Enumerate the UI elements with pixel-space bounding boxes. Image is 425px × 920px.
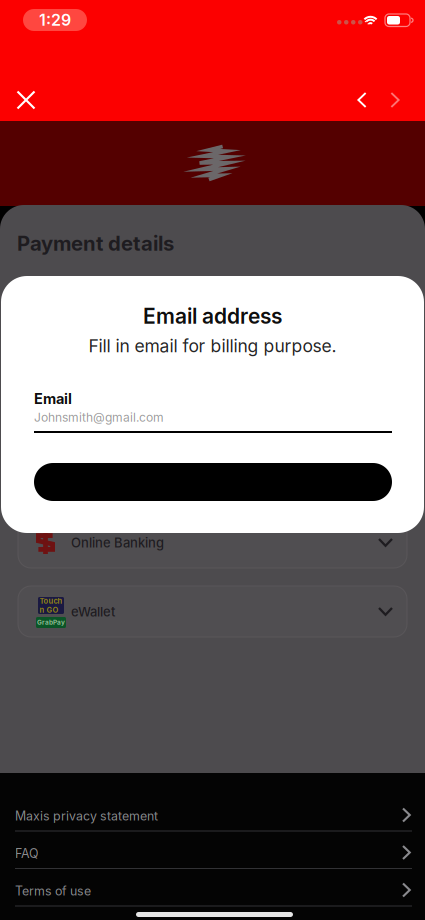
staticText: Credit / Debit Card: [71, 328, 185, 344]
staticText: Online Banking: [71, 535, 164, 551]
button[interactable]: FAQ: [15, 837, 412, 875]
staticText: 1:29: [39, 10, 71, 30]
staticText: Payment details: [17, 231, 174, 256]
staticText: Maxis privacy statement: [15, 808, 158, 823]
button[interactable]: Touch n GO: [18, 586, 407, 637]
button[interactable]: Forward: [375, 77, 415, 123]
staticText: Touch n GO: [39, 458, 62, 476]
button[interactable]: Credit / Debit Card: [18, 310, 407, 361]
button[interactable]: Continue: [34, 463, 392, 501]
staticText: Online Banking: [71, 397, 164, 413]
staticText: Terms of use: [15, 883, 91, 898]
button[interactable]: Terms of use: [15, 875, 412, 912]
staticText: Johnsmith@gmail.com: [34, 410, 164, 425]
staticText: Email: [34, 390, 72, 407]
staticText: Email address: [143, 303, 282, 329]
button[interactable]: Back: [342, 77, 382, 123]
button[interactable]: Online Banking: [18, 517, 407, 568]
staticText: eWallet: [71, 604, 115, 620]
staticText: FAQ: [15, 846, 38, 861]
button[interactable]: Close: [2, 77, 50, 123]
staticText: Touch n GO: [39, 596, 62, 614]
button[interactable]: Online Banking: [18, 379, 407, 430]
button[interactable]: Touch n GO: [18, 448, 407, 499]
staticText: Fill in email for billing purpose.: [88, 335, 336, 357]
staticText: GrabPay: [37, 619, 65, 626]
button[interactable]: Maxis privacy statement: [15, 800, 412, 837]
